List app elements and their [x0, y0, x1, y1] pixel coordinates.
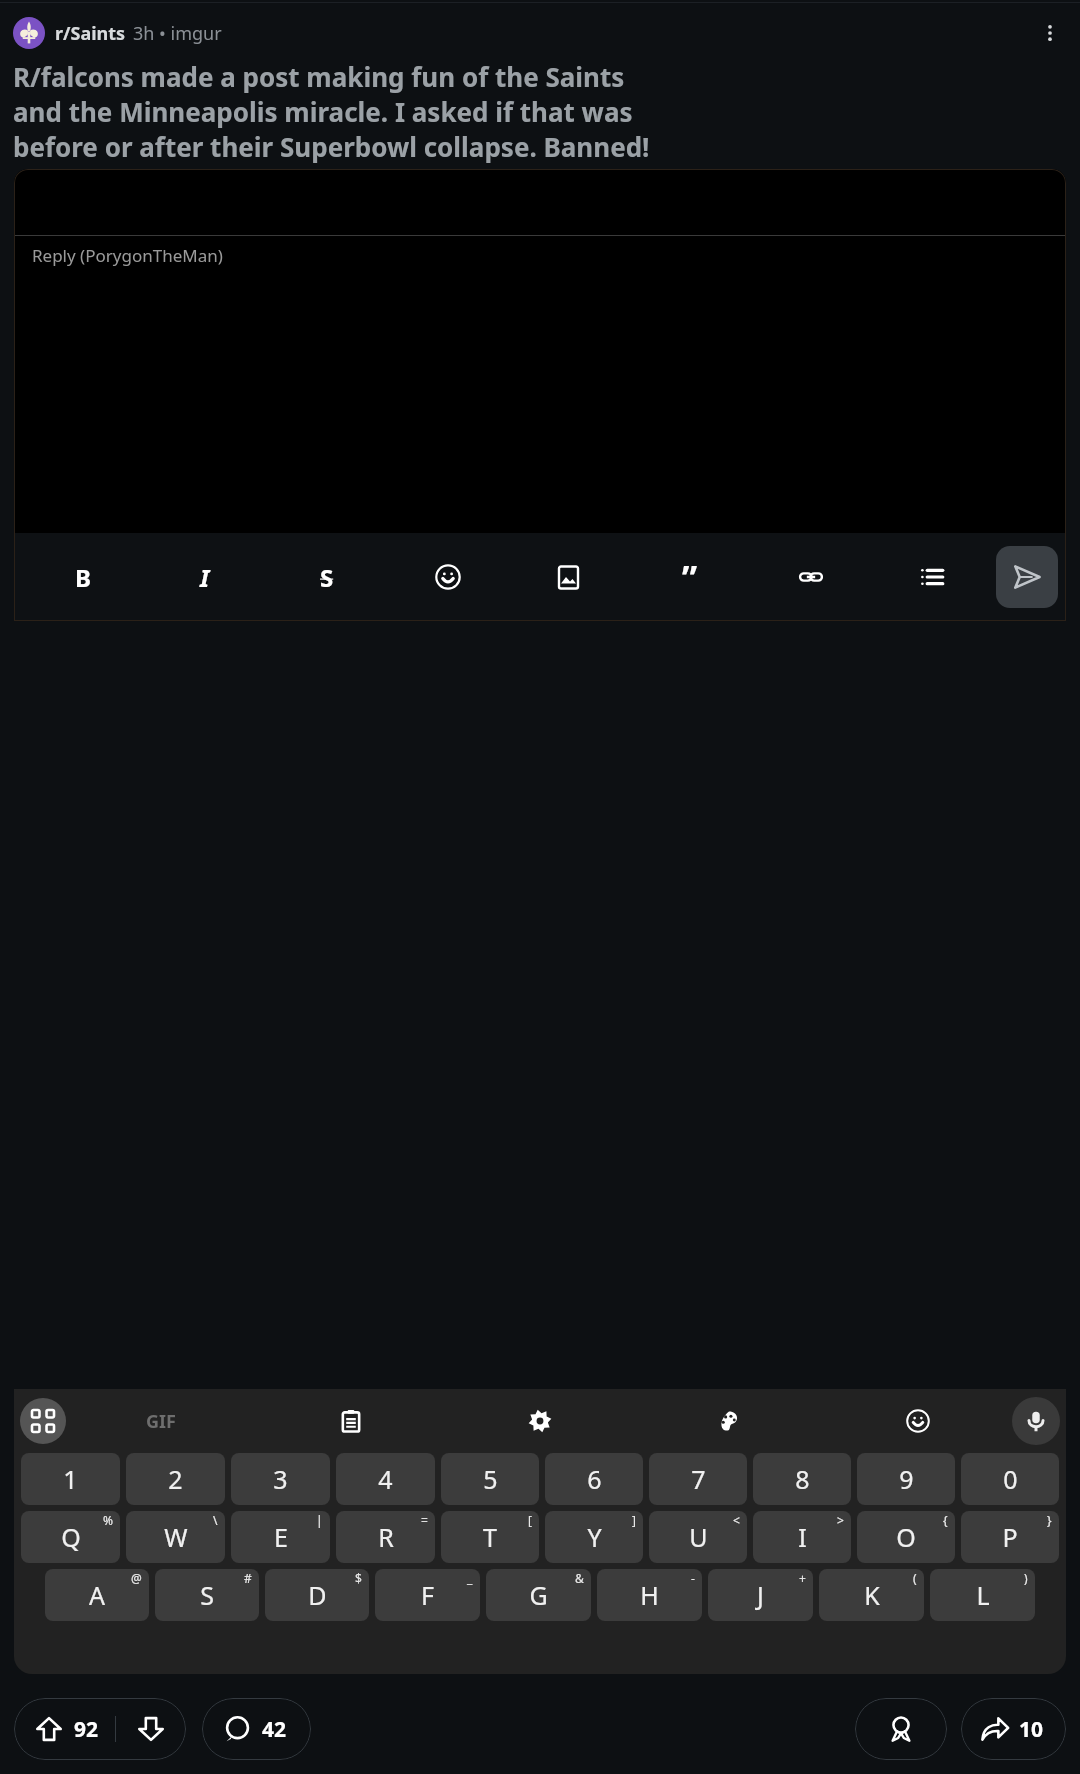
- button[interactable]: J: [708, 1569, 813, 1621]
- staticText: B: [75, 561, 91, 594]
- staticText: 10: [1019, 1715, 1044, 1744]
- button[interactable]: O: [857, 1511, 955, 1563]
- staticText: 9: [899, 1462, 914, 1496]
- staticText: and the Minneapolis miracle. I asked if …: [13, 94, 633, 129]
- staticText: Y: [587, 1520, 602, 1554]
- button[interactable]: P: [961, 1511, 1059, 1563]
- button[interactable]: 1: [21, 1453, 120, 1505]
- button[interactable]: 3: [231, 1453, 330, 1505]
- staticText: 42: [262, 1715, 287, 1744]
- button[interactable]: 0: [961, 1453, 1059, 1505]
- button[interactable]: Downvote: [138, 1698, 164, 1760]
- staticText: S: [200, 1578, 214, 1612]
- button[interactable]: Give award: [855, 1698, 947, 1760]
- button[interactable]: F: [375, 1569, 480, 1621]
- button[interactable]: gear: [445, 1396, 634, 1446]
- button[interactable]: More options: [1030, 13, 1070, 53]
- staticText: >: [837, 1512, 844, 1528]
- staticText: U: [689, 1520, 708, 1554]
- staticText: E: [274, 1520, 288, 1554]
- button[interactable]: Keyboard modes: [20, 1398, 66, 1444]
- staticText: ]: [632, 1512, 636, 1528]
- button[interactable]: 4: [336, 1453, 435, 1505]
- button[interactable]: D: [265, 1569, 369, 1621]
- staticText: <: [733, 1512, 740, 1528]
- button[interactable]: G: [486, 1569, 591, 1621]
- staticText: 5: [483, 1462, 498, 1496]
- button[interactable]: 5: [441, 1453, 539, 1505]
- staticText: Reply (PorygonTheMan): [32, 244, 223, 267]
- staticText: GIF: [146, 1409, 176, 1434]
- staticText: _: [467, 1570, 473, 1586]
- staticText: O: [896, 1520, 916, 1554]
- button[interactable]: A: [45, 1569, 149, 1621]
- button[interactable]: List: [871, 547, 992, 607]
- staticText: I: [798, 1520, 807, 1554]
- staticText: I: [200, 561, 210, 594]
- button[interactable]: clip: [256, 1396, 445, 1446]
- staticText: {: [943, 1512, 948, 1528]
- button[interactable]: 8: [753, 1453, 851, 1505]
- button[interactable]: emoji: [823, 1396, 1012, 1446]
- staticText: [: [528, 1512, 532, 1528]
- button[interactable]: Y: [545, 1511, 643, 1563]
- button[interactable]: 7: [649, 1453, 747, 1505]
- staticText: r/Saints: [55, 21, 126, 46]
- staticText: $: [355, 1570, 362, 1586]
- button[interactable]: 10: [961, 1698, 1066, 1760]
- staticText: %: [103, 1512, 113, 1528]
- staticText: 7: [691, 1462, 706, 1496]
- button[interactable]: Image: [508, 547, 629, 607]
- button[interactable]: E: [231, 1511, 330, 1563]
- staticText: A: [89, 1578, 105, 1612]
- staticText: \: [213, 1512, 218, 1528]
- button[interactable]: T: [441, 1511, 539, 1563]
- staticText: 3: [273, 1462, 288, 1496]
- staticText: D: [308, 1578, 327, 1612]
- button[interactable]: Bold: [22, 547, 144, 607]
- button[interactable]: Emoji: [387, 547, 508, 607]
- button[interactable]: W: [126, 1511, 225, 1563]
- button[interactable]: U: [649, 1511, 747, 1563]
- button[interactable]: Send reply: [996, 546, 1058, 608]
- button[interactable]: 9: [857, 1453, 955, 1505]
- staticText: K: [864, 1578, 880, 1612]
- button[interactable]: H: [597, 1569, 702, 1621]
- button[interactable]: Quote: [629, 547, 750, 607]
- staticText: T: [483, 1520, 497, 1554]
- staticText: 6: [587, 1462, 602, 1496]
- staticText: before or after their Superbowl collapse…: [13, 129, 650, 164]
- staticText: ”: [682, 554, 698, 600]
- button[interactable]: L: [930, 1569, 1035, 1621]
- button[interactable]: Subreddit avatar: [13, 17, 45, 49]
- button[interactable]: 42: [202, 1698, 311, 1760]
- staticText: |: [316, 1512, 323, 1528]
- staticText: (: [913, 1570, 917, 1586]
- button[interactable]: K: [819, 1569, 924, 1621]
- button[interactable]: r/Saints: [55, 21, 222, 46]
- staticText: L: [976, 1578, 990, 1612]
- button[interactable]: Strikethrough: [266, 547, 387, 607]
- button[interactable]: Q: [21, 1511, 120, 1563]
- button[interactable]: Italic: [144, 547, 266, 607]
- staticText: P: [1002, 1520, 1018, 1554]
- staticText: 1: [63, 1462, 78, 1496]
- staticText: &: [575, 1570, 584, 1586]
- button[interactable]: I: [753, 1511, 851, 1563]
- button[interactable]: R: [336, 1511, 435, 1563]
- button[interactable]: Reply (PorygonTheMan): [14, 236, 1066, 274]
- staticText: S: [320, 561, 334, 594]
- button[interactable]: GIF: [66, 1396, 256, 1446]
- button[interactable]: Voice input: [1012, 1397, 1060, 1445]
- staticText: -: [691, 1570, 695, 1586]
- button[interactable]: 92: [14, 1698, 186, 1760]
- staticText: 8: [795, 1462, 810, 1496]
- button[interactable]: S: [155, 1569, 259, 1621]
- staticText: G: [529, 1578, 548, 1612]
- staticText: R/falcons made a post making fun of the …: [13, 59, 625, 94]
- button[interactable]: palette: [634, 1396, 823, 1446]
- button[interactable]: 6: [545, 1453, 643, 1505]
- button[interactable]: 2: [126, 1453, 225, 1505]
- staticText: 2: [168, 1462, 183, 1496]
- button[interactable]: Link: [750, 547, 871, 607]
